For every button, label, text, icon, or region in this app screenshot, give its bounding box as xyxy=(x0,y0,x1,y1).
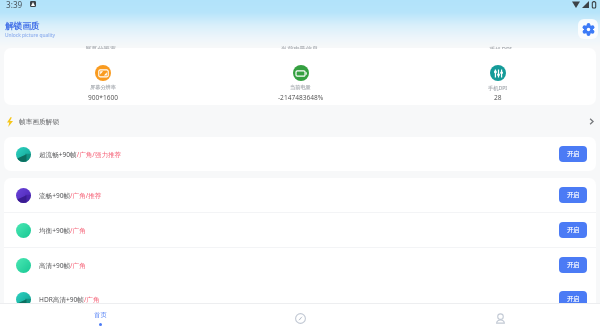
button[interactable]: 手机DPI xyxy=(399,48,596,105)
staticText: 当前电量 xyxy=(290,84,311,91)
staticText: 超流畅+90帧/广角/强力推荐 xyxy=(39,150,122,159)
staticText: 28 xyxy=(494,93,502,102)
button[interactable]: Home xyxy=(0,304,200,332)
button[interactable]: 开启 xyxy=(559,291,587,307)
staticText: 屏幕分辨率 xyxy=(90,84,116,91)
staticText: HDR高清+90帧/广角 xyxy=(39,295,100,304)
button[interactable]: 超流畅+90帧/广角/强力推荐 xyxy=(4,137,596,171)
button[interactable]: 开启 xyxy=(559,146,587,162)
staticText: 解锁画质 xyxy=(5,21,40,32)
button[interactable]: Settings xyxy=(578,19,598,39)
button[interactable]: 当前电量 xyxy=(202,48,399,105)
button[interactable]: Explore xyxy=(200,304,400,332)
button[interactable]: 流畅+90帧/广角/推荐 xyxy=(4,178,596,212)
button[interactable]: 开启 xyxy=(559,187,587,203)
staticText: 开启 xyxy=(567,226,580,234)
staticText: 手机DPI xyxy=(488,84,508,91)
staticText: 开启 xyxy=(567,191,580,199)
staticText: 900*1600 xyxy=(88,93,119,102)
button[interactable]: 帧率画质解锁 xyxy=(7,109,595,134)
button[interactable]: Profile xyxy=(400,304,600,332)
button[interactable]: 屏幕分辨率 xyxy=(4,48,202,105)
button[interactable]: 开启 xyxy=(559,222,587,238)
staticText: 3:39 xyxy=(6,0,23,10)
button[interactable]: HDR高清+90帧/广角 xyxy=(4,282,596,316)
button[interactable]: 高清+90帧/广角 xyxy=(4,248,596,282)
button[interactable]: 开启 xyxy=(559,257,587,273)
button[interactable]: 均衡+90帧/广角 xyxy=(4,213,596,247)
staticText: 帧率画质解锁 xyxy=(19,118,60,126)
staticText: 开启 xyxy=(567,150,580,158)
staticText: 首页 xyxy=(94,311,107,319)
staticText: Unlock picture quality xyxy=(5,32,55,39)
staticText: 手机DPI xyxy=(489,46,512,49)
staticText: -2147483648% xyxy=(278,93,324,102)
staticText: 当前电量信息 xyxy=(281,46,319,49)
staticText: 均衡+90帧/广角 xyxy=(39,226,86,235)
staticText: 流畅+90帧/广角/推荐 xyxy=(39,191,102,200)
staticText: 高清+90帧/广角 xyxy=(39,261,86,270)
staticText: 开启 xyxy=(567,295,580,303)
staticText: 屏幕分辨率 xyxy=(85,46,116,49)
staticText: 开启 xyxy=(567,261,580,269)
